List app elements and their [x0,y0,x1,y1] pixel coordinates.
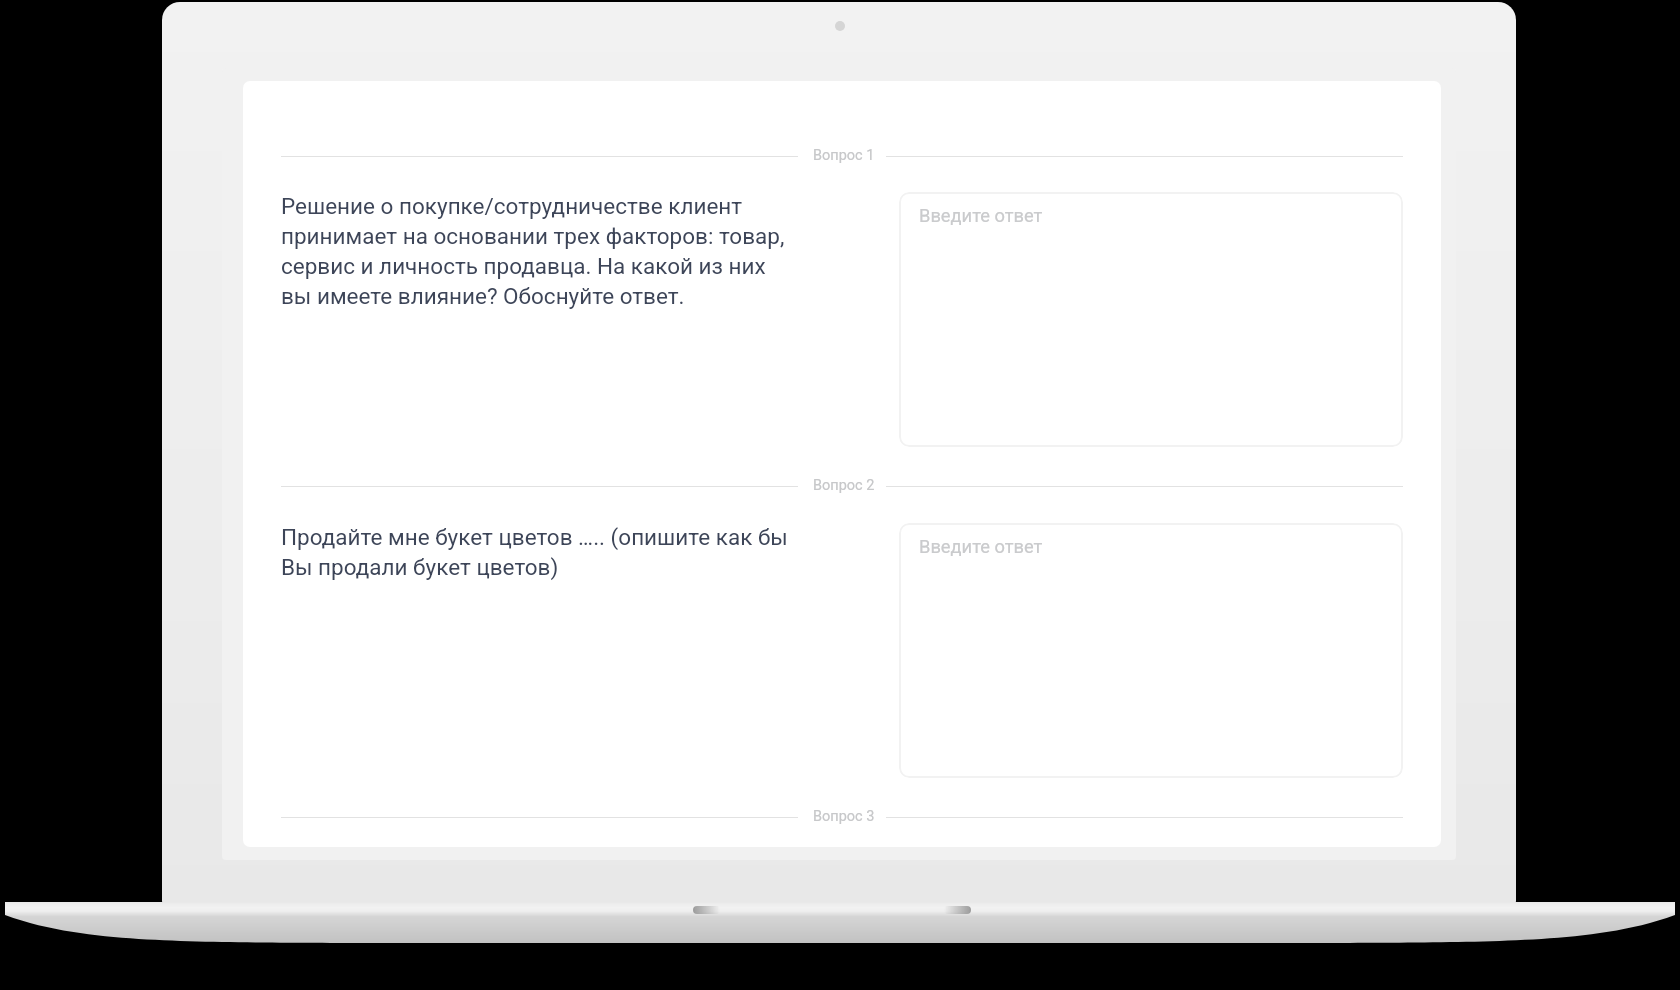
button[interactable]: Введите ответ [899,523,1403,778]
staticText: Вопрос 2 [813,477,875,494]
button[interactable]: Введите ответ [899,192,1403,447]
staticText: Введите ответ [919,205,1043,226]
staticText: Продайте мне букет цветов ….. (опишите к… [281,524,793,580]
staticText: Введите ответ [919,536,1043,557]
staticText: Вопрос 3 [813,808,875,825]
other: Webcam [835,21,845,31]
staticText: Вопрос 1 [813,147,875,164]
staticText: Решение о покупке/сотрудничестве клиент … [281,193,793,309]
